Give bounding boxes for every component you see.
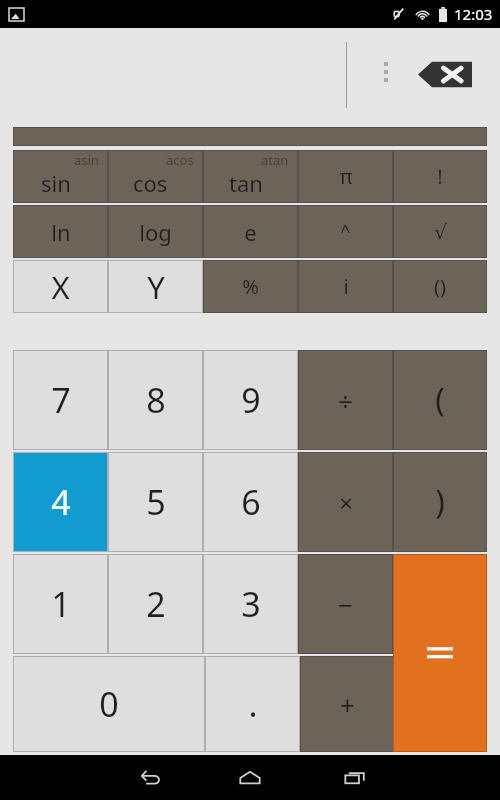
staticText: − (338, 587, 353, 622)
staticText: × (339, 486, 353, 519)
staticText: acos (166, 151, 194, 169)
button[interactable]: ! (394, 151, 486, 202)
staticText: X (51, 266, 70, 308)
button[interactable]: More options (381, 62, 391, 82)
button[interactable]: ÷ (299, 351, 392, 449)
staticText: 1 (51, 581, 71, 627)
staticText: 2 (146, 581, 166, 627)
staticText: Y (147, 266, 165, 308)
staticText: π (339, 163, 353, 190)
button[interactable]: asin (14, 151, 107, 202)
staticText: √ (434, 220, 447, 243)
button[interactable]: Backspace (418, 60, 472, 89)
button[interactable]: log (109, 206, 202, 257)
button[interactable]: Back (120, 755, 180, 800)
button[interactable]: 2 (109, 555, 202, 653)
staticText: e (244, 217, 257, 247)
button[interactable]: 1 (14, 555, 107, 653)
button[interactable]: 0 (14, 657, 204, 751)
staticText: log (139, 217, 172, 247)
button[interactable]: acos (109, 151, 202, 202)
staticText: 4 (51, 479, 71, 525)
staticText: 7 (51, 377, 71, 423)
button[interactable]: √ (394, 206, 486, 257)
staticText: atan (261, 151, 289, 169)
button[interactable]: ^ (299, 206, 392, 257)
button[interactable]: Equals (394, 555, 486, 751)
staticText: 12:03 (454, 4, 493, 24)
staticText: . (248, 681, 258, 727)
button[interactable]: π (299, 151, 392, 202)
button[interactable]: ) (394, 453, 486, 551)
staticText: + (340, 687, 355, 722)
button[interactable]: atan (204, 151, 297, 202)
staticText: i (343, 273, 349, 300)
button[interactable]: × (299, 453, 392, 551)
staticText: % (242, 273, 259, 300)
button[interactable]: − (299, 555, 392, 653)
button[interactable]: 4 (14, 453, 107, 551)
button[interactable]: ln (14, 206, 107, 257)
staticText: ^ (340, 219, 351, 244)
button[interactable]: () (394, 261, 486, 312)
button[interactable]: 6 (204, 453, 297, 551)
staticText: sin (41, 168, 71, 198)
button[interactable]: X (14, 261, 107, 312)
button[interactable]: i (299, 261, 392, 312)
button[interactable]: 3 (204, 555, 297, 653)
button[interactable]: % (204, 261, 297, 312)
staticText: cos (133, 168, 168, 198)
staticText: ln (51, 217, 71, 247)
staticText: 6 (241, 479, 261, 525)
staticText: asin (74, 151, 99, 169)
button[interactable]: ( (394, 351, 486, 449)
button[interactable]: e (204, 206, 297, 257)
button[interactable]: 8 (109, 351, 202, 449)
staticText: 8 (146, 377, 166, 423)
button[interactable]: 9 (204, 351, 297, 449)
staticText: 9 (241, 377, 261, 423)
button[interactable]: Home (220, 755, 280, 800)
button[interactable]: 5 (109, 453, 202, 551)
button[interactable]: . (206, 657, 299, 751)
staticText: 3 (241, 581, 261, 627)
staticText: ( (435, 378, 445, 422)
staticText: ! (437, 163, 443, 190)
staticText: () (434, 273, 446, 300)
button[interactable]: 7 (14, 351, 107, 449)
button[interactable]: Y (109, 261, 202, 312)
staticText: 0 (99, 681, 119, 727)
staticText: ÷ (338, 383, 353, 418)
button[interactable]: Recent apps (325, 755, 385, 800)
staticText: tan (229, 168, 263, 198)
staticText: 5 (146, 479, 166, 525)
button[interactable]: + (301, 657, 394, 751)
staticText: ) (435, 480, 445, 524)
